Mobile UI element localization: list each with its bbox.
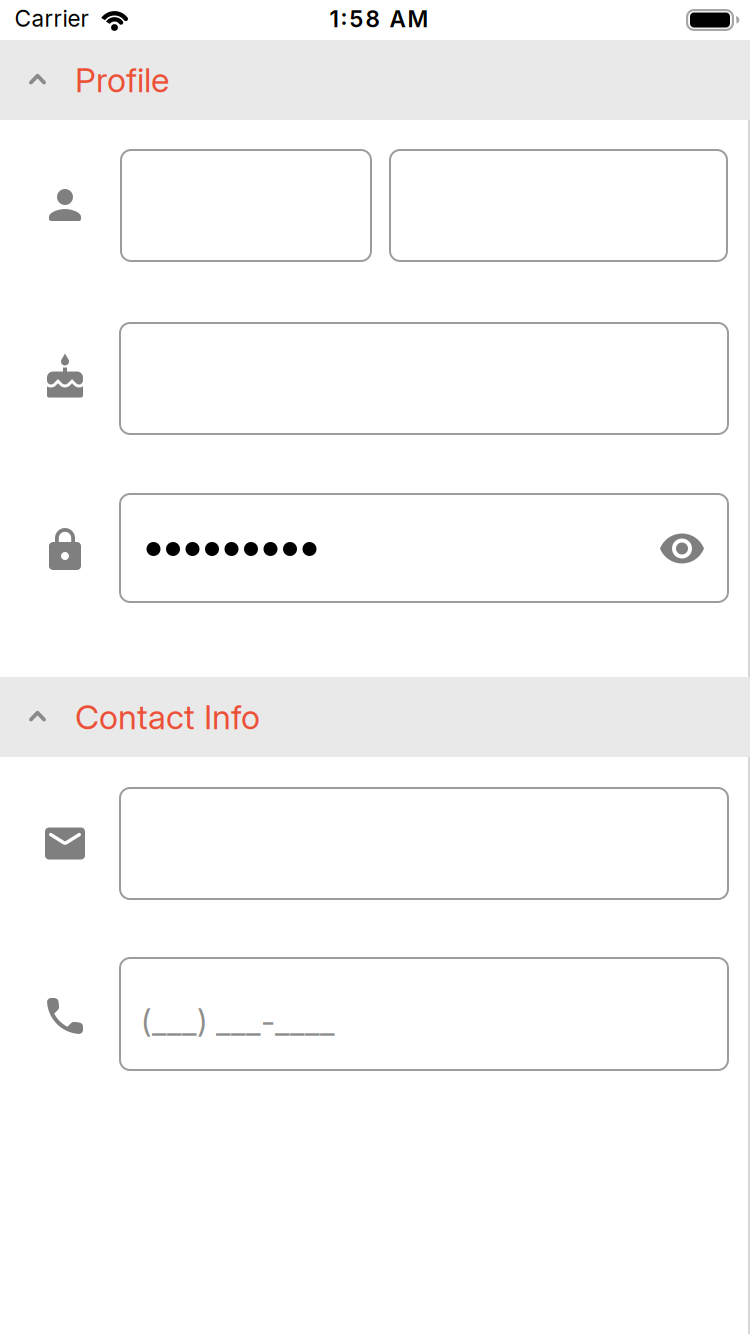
button[interactable]: Birthday	[120, 323, 728, 434]
button[interactable]: Phone number	[120, 958, 728, 1070]
staticText: 1:58 AM	[329, 6, 428, 32]
button[interactable]: Profile	[0, 40, 750, 120]
button[interactable]: Email	[120, 788, 728, 899]
button[interactable]: Last name	[390, 150, 727, 261]
button[interactable]: Show password	[658, 524, 706, 572]
staticText: (___) ___-____	[141, 1002, 335, 1040]
button[interactable]: First name	[121, 150, 371, 261]
staticText: Contact Info	[75, 697, 260, 737]
button[interactable]: Contact Info	[0, 677, 750, 757]
staticText: Carrier	[14, 5, 88, 32]
button[interactable]: Password	[120, 494, 728, 602]
staticText: Profile	[75, 60, 169, 100]
